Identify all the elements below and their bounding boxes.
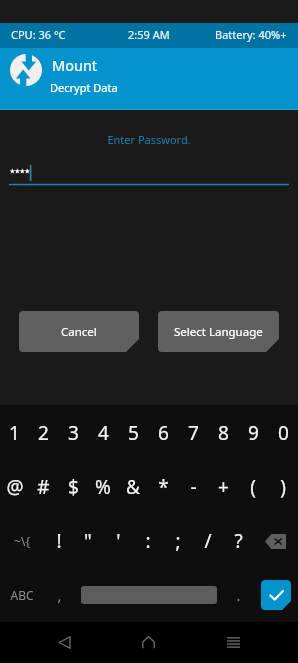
staticText: 2:59 AM <box>128 27 170 42</box>
staticText: Cancel <box>61 324 97 340</box>
staticText: $ <box>68 474 79 500</box>
staticText: + <box>218 474 229 500</box>
button[interactable]: # <box>29 460 58 514</box>
button[interactable]: Space <box>74 568 223 622</box>
staticText: 4 <box>98 420 109 446</box>
staticText: Mount <box>52 55 98 75</box>
button[interactable]: , <box>44 568 74 622</box>
staticText: 8 <box>218 420 229 446</box>
button[interactable]: / <box>193 514 223 568</box>
button[interactable]: * <box>148 460 178 514</box>
staticText: 6 <box>158 420 169 446</box>
button[interactable]: Recent apps <box>191 622 276 663</box>
staticText: Select Language <box>174 324 263 340</box>
button[interactable]: " <box>73 514 103 568</box>
staticText: ; <box>175 528 181 554</box>
button[interactable]: - <box>178 460 208 514</box>
button[interactable]: % <box>88 460 118 514</box>
staticText: Enter Password. <box>0 132 298 147</box>
button[interactable]: 7 <box>178 405 208 460</box>
staticText: 5 <box>128 420 139 446</box>
staticText: - <box>190 474 197 500</box>
staticText: Decrypt Data <box>50 80 118 95</box>
staticText: 7 <box>188 420 199 446</box>
staticText: 2 <box>38 420 49 446</box>
button[interactable]: ! <box>44 514 73 568</box>
staticText: ' <box>116 528 121 554</box>
button[interactable]: : <box>133 514 163 568</box>
button[interactable]: 1 <box>0 405 29 460</box>
staticText: ( <box>250 474 256 500</box>
staticText: 0 <box>278 420 289 446</box>
staticText: ? <box>234 528 243 554</box>
staticText: ) <box>280 474 286 500</box>
button[interactable]: ; <box>163 514 193 568</box>
button[interactable]: 3 <box>58 405 88 460</box>
staticText: ~\{ <box>14 533 30 549</box>
button[interactable]: + <box>208 460 238 514</box>
button[interactable]: 6 <box>148 405 178 460</box>
staticText: CPU: 36 °C <box>11 27 66 42</box>
button[interactable]: Enter <box>253 568 298 622</box>
staticText: ! <box>56 528 62 554</box>
staticText: # <box>37 474 50 500</box>
button[interactable]: ( <box>238 460 268 514</box>
staticText: & <box>126 474 140 500</box>
button[interactable]: 8 <box>208 405 238 460</box>
staticText: 9 <box>248 420 259 446</box>
staticText: @ <box>6 474 24 500</box>
button[interactable]: ~\{ <box>0 514 44 568</box>
button[interactable]: Select Language <box>158 311 279 352</box>
button[interactable]: 5 <box>118 405 148 460</box>
staticText: . <box>236 585 241 605</box>
staticText: : <box>145 528 151 554</box>
button[interactable]: Cancel <box>19 311 139 352</box>
button[interactable]: Back <box>22 622 106 663</box>
staticText: " <box>84 528 92 554</box>
button[interactable]: 0 <box>268 405 298 460</box>
button[interactable]: & <box>118 460 148 514</box>
button[interactable]: ) <box>268 460 298 514</box>
button[interactable]: ? <box>223 514 253 568</box>
button[interactable]: Home <box>106 622 191 663</box>
staticText: Battery: 40%+ <box>215 27 287 42</box>
button[interactable]: @ <box>0 460 29 514</box>
staticText: * <box>158 474 169 500</box>
staticText: 1 <box>9 420 20 446</box>
staticText: ABC <box>10 587 34 603</box>
button[interactable]: . <box>223 568 253 622</box>
button[interactable]: ' <box>103 514 133 568</box>
button[interactable]: 2 <box>29 405 58 460</box>
button[interactable]: Backspace <box>253 514 298 568</box>
staticText: 3 <box>68 420 79 446</box>
staticText: , <box>57 585 62 605</box>
button[interactable]: 9 <box>238 405 268 460</box>
button[interactable]: $ <box>58 460 88 514</box>
staticText: / <box>204 528 212 554</box>
button[interactable]: ABC <box>0 568 44 622</box>
button[interactable]: 4 <box>88 405 118 460</box>
staticText: % <box>95 474 111 500</box>
